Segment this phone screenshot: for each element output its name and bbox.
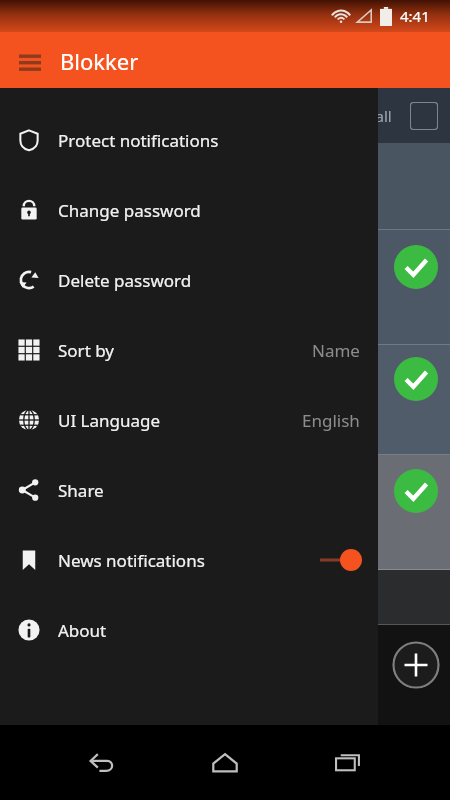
staticText: Protect notifications	[58, 129, 219, 152]
button[interactable]: Delete password	[0, 245, 378, 315]
button[interactable]	[0, 455, 450, 570]
button[interactable]: Back	[75, 736, 129, 790]
staticText: News notifications	[58, 549, 205, 572]
staticText: Select all	[330, 106, 392, 126]
button[interactable]	[0, 345, 450, 455]
button[interactable]: UI Language	[0, 385, 378, 455]
staticText: UI Language	[58, 409, 161, 432]
button[interactable]: Share	[0, 455, 378, 525]
button[interactable]: Sort by	[0, 315, 378, 385]
staticText: Sort by	[58, 339, 114, 362]
button[interactable]	[0, 143, 450, 230]
button[interactable]	[0, 570, 450, 625]
button[interactable]: Protect notifications	[0, 105, 378, 175]
staticText: English	[302, 409, 360, 432]
button[interactable]: Open navigation drawer	[8, 40, 52, 84]
staticText: 4:41	[400, 6, 430, 26]
staticText: About	[58, 619, 107, 642]
button[interactable]: Add	[392, 641, 440, 689]
staticText: Share	[58, 479, 104, 502]
button[interactable]	[0, 230, 450, 345]
button[interactable]: Select all	[410, 102, 438, 130]
button[interactable]: Recent apps	[321, 736, 375, 790]
staticText: Blokker	[60, 46, 139, 76]
button[interactable]: About	[0, 595, 378, 665]
button[interactable]: News notifications	[0, 525, 378, 595]
staticText: Name	[312, 339, 360, 362]
staticText: Delete password	[58, 269, 192, 292]
button[interactable]: Home	[198, 736, 252, 790]
button[interactable]: Change password	[0, 175, 378, 245]
staticText: Change password	[58, 199, 201, 222]
button[interactable]: News notifications toggle	[318, 548, 362, 572]
